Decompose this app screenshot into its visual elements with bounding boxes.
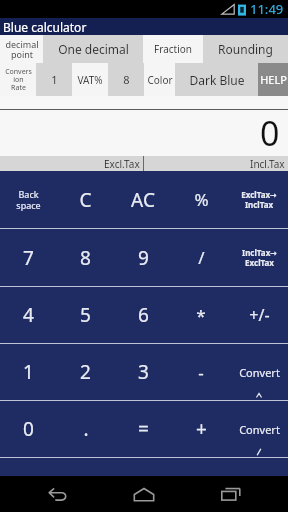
- button[interactable]: Excl.Tax: [0, 156, 143, 171]
- staticText: 8: [123, 72, 130, 87]
- button[interactable]: Blue calculator: [0, 18, 288, 35]
- button[interactable]: %: [172, 171, 230, 228]
- button[interactable]: /: [172, 229, 230, 286]
- button[interactable]: +: [172, 401, 230, 457]
- staticText: Excl.Tax: [104, 157, 140, 171]
- button[interactable]: Back space: [0, 171, 57, 228]
- staticText: One decimal: [58, 41, 129, 57]
- staticText: *: [196, 304, 206, 327]
- staticText: C: [79, 187, 92, 213]
- button[interactable]: One decimal: [43, 35, 143, 63]
- button[interactable]: 1: [36, 63, 72, 96]
- button[interactable]: HELP: [258, 63, 288, 96]
- staticText: 9: [138, 245, 149, 271]
- button[interactable]: Dark Blue: [175, 63, 258, 96]
- staticText: 6: [138, 302, 149, 328]
- button[interactable]: Convers ion Rate: [0, 63, 36, 96]
- staticText: InclTax→ ExclTax: [242, 247, 277, 268]
- button[interactable]: Rounding: [203, 35, 288, 63]
- staticText: Rounding: [218, 41, 273, 57]
- staticText: 3: [138, 359, 149, 385]
- staticText: %: [194, 188, 209, 211]
- button[interactable]: +/-: [230, 287, 288, 343]
- staticText: 5: [80, 302, 91, 328]
- button[interactable]: Convert: [230, 401, 288, 457]
- button[interactable]: Recent apps: [202, 476, 260, 512]
- staticText: Convert: [239, 365, 280, 380]
- staticText: Back space: [16, 188, 41, 211]
- staticText: Dark Blue: [189, 72, 245, 88]
- button[interactable]: 9: [114, 229, 172, 286]
- button[interactable]: -: [172, 344, 230, 400]
- staticText: 11:49: [250, 0, 284, 18]
- staticText: .: [83, 416, 89, 442]
- staticText: Convert: [239, 422, 280, 437]
- button[interactable]: decimal point: [0, 35, 43, 63]
- button[interactable]: 8: [108, 63, 144, 96]
- button[interactable]: 1: [0, 344, 57, 400]
- staticText: Color: [147, 73, 173, 87]
- button[interactable]: 4: [0, 287, 57, 343]
- staticText: Blue calculator: [3, 19, 87, 35]
- button[interactable]: 5: [57, 287, 114, 343]
- staticText: +/-: [249, 304, 270, 326]
- button[interactable]: Convert: [230, 344, 288, 400]
- staticText: Fraction: [154, 42, 192, 56]
- button[interactable]: .: [57, 401, 114, 457]
- staticText: 1: [51, 72, 58, 87]
- staticText: AC: [131, 187, 155, 213]
- staticText: decimal point: [5, 38, 39, 60]
- staticText: 7: [23, 245, 34, 271]
- button[interactable]: 2: [57, 344, 114, 400]
- staticText: /: [198, 246, 205, 269]
- button[interactable]: AC: [114, 171, 172, 228]
- staticText: -: [198, 361, 204, 384]
- button[interactable]: 0: [0, 401, 57, 457]
- staticText: +: [196, 416, 207, 442]
- staticText: VAT%: [77, 73, 103, 87]
- staticText: Convers ion Rate: [5, 67, 32, 92]
- button[interactable]: *: [172, 287, 230, 343]
- staticText: 0: [260, 110, 280, 156]
- button[interactable]: =: [114, 401, 172, 457]
- button[interactable]: Color: [144, 63, 175, 96]
- staticText: 1: [23, 359, 34, 385]
- button[interactable]: 0: [0, 110, 288, 156]
- button[interactable]: Incl.Tax: [144, 156, 288, 171]
- button[interactable]: VAT%: [72, 63, 108, 96]
- button[interactable]: Home: [115, 476, 173, 512]
- button[interactable]: Back: [29, 476, 87, 512]
- staticText: ExclTax→ InclTax: [241, 189, 277, 210]
- staticText: HELP: [260, 72, 287, 87]
- button[interactable]: 6: [114, 287, 172, 343]
- button[interactable]: 8: [57, 229, 114, 286]
- button[interactable]: InclTax→ ExclTax: [230, 229, 288, 286]
- staticText: =: [138, 416, 149, 442]
- button[interactable]: Fraction: [143, 35, 203, 63]
- staticText: Incl.Tax: [250, 157, 285, 171]
- staticText: 4: [23, 302, 34, 328]
- staticText: 0: [23, 416, 34, 442]
- button[interactable]: 3: [114, 344, 172, 400]
- button[interactable]: ExclTax→ InclTax: [230, 171, 288, 228]
- button[interactable]: C: [57, 171, 114, 228]
- staticText: 8: [80, 245, 91, 271]
- staticText: 2: [80, 359, 91, 385]
- button[interactable]: 7: [0, 229, 57, 286]
